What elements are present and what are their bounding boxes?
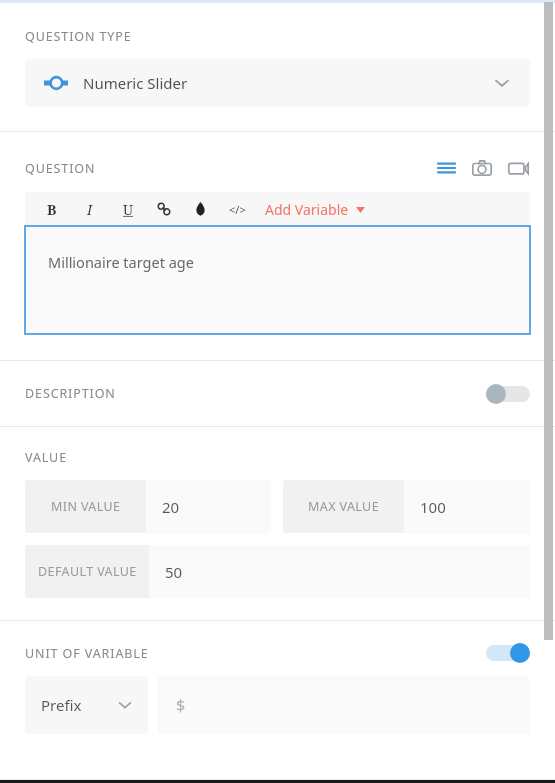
button[interactable]: Text options — [434, 156, 458, 180]
button[interactable]: I — [79, 198, 101, 220]
button[interactable]: Text colour — [189, 198, 211, 220]
button[interactable]: B — [41, 198, 63, 220]
staticText: U — [123, 200, 134, 219]
staticText: </> — [229, 202, 246, 217]
staticText: MAX VALUE — [308, 498, 380, 515]
button[interactable]: Millionaire target age — [25, 226, 530, 334]
staticText: Prefix — [41, 695, 82, 715]
button[interactable]: Numeric Slider — [25, 59, 530, 107]
button[interactable]: MAX VALUE — [283, 480, 530, 533]
staticText: Numeric Slider — [83, 73, 188, 93]
button[interactable]: Insert link — [153, 198, 175, 220]
button[interactable]: U — [117, 198, 139, 220]
button[interactable]: DEFAULT VALUE — [25, 545, 530, 598]
staticText: MIN VALUE — [51, 498, 121, 515]
staticText: I — [87, 200, 93, 219]
staticText: QUESTION TYPE — [25, 28, 132, 45]
staticText: 50 — [165, 562, 183, 582]
staticText: 20 — [162, 497, 180, 517]
button[interactable]: MIN VALUE — [25, 480, 271, 533]
staticText: UNIT OF VARIABLE — [25, 645, 149, 662]
button[interactable]: Add video — [506, 156, 530, 180]
staticText: VALUE — [25, 449, 68, 466]
button[interactable]: Toggle off — [486, 384, 530, 404]
button[interactable]: Toggle on — [486, 643, 530, 663]
staticText: 100 — [420, 497, 446, 517]
button[interactable]: Add Variable — [265, 200, 365, 219]
staticText: QUESTION — [25, 160, 96, 177]
button[interactable]: Source code — [225, 197, 249, 221]
staticText: B — [47, 200, 57, 219]
staticText: DEFAULT VALUE — [38, 563, 137, 580]
staticText: Millionaire target age — [48, 252, 194, 272]
staticText: $ — [176, 694, 186, 716]
button[interactable]: Add photo — [470, 156, 494, 180]
staticText: Add Variable — [265, 200, 349, 219]
button[interactable]: Prefix — [25, 676, 148, 734]
staticText: DESCRIPTION — [25, 385, 116, 402]
